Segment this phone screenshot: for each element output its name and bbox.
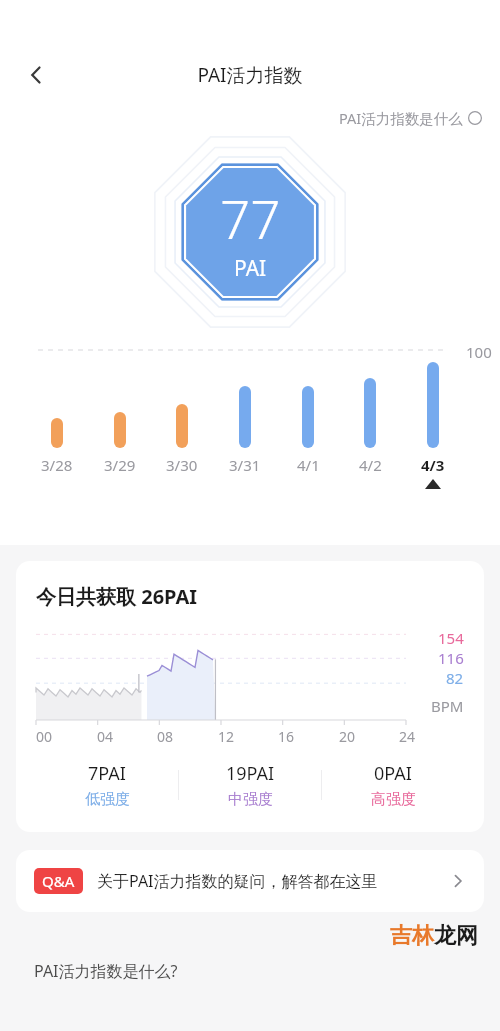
staticText: 中强度: [228, 790, 273, 809]
staticText: 4/1: [297, 455, 320, 475]
staticText: 4/2: [359, 455, 382, 475]
staticText: 3/31: [229, 455, 261, 475]
button[interactable]: 0PAI: [322, 761, 464, 809]
button[interactable]: PAI活力指数是什么: [339, 108, 482, 128]
staticText: 龙网: [434, 922, 478, 950]
staticText: 0PAI: [374, 761, 412, 786]
button[interactable]: Back: [14, 53, 58, 97]
staticText: 24: [399, 727, 416, 746]
staticText: 16: [278, 727, 295, 746]
staticText: PAI活力指数是什么: [339, 108, 463, 128]
staticText: 关于PAI活力指数的疑问，解答都在这里: [97, 870, 378, 892]
staticText: 19PAI: [226, 761, 275, 786]
staticText: 7PAI: [88, 761, 126, 786]
staticText: BPM: [431, 696, 464, 716]
staticText: 00: [36, 727, 53, 746]
staticText: 3/30: [166, 455, 198, 475]
button[interactable]: 7PAI: [36, 761, 178, 809]
staticText: 12: [218, 727, 235, 746]
staticText: 154: [438, 628, 464, 648]
staticText: 04: [97, 727, 114, 746]
button[interactable]: 今日共获取 26PAI: [16, 561, 484, 832]
staticText: 116: [438, 648, 464, 668]
staticText: PAI: [234, 254, 267, 283]
staticText: 高强度: [371, 790, 416, 809]
staticText: 吉林: [390, 922, 434, 950]
staticText: Q&A: [42, 871, 75, 891]
staticText: 77: [220, 182, 281, 254]
staticText: 4/3: [421, 455, 445, 475]
staticText: PAI活力指数是什么?: [34, 960, 178, 982]
staticText: 82: [446, 668, 464, 688]
staticText: 20: [339, 727, 356, 746]
staticText: 今日共获取 26PAI: [36, 583, 198, 610]
staticText: 08: [157, 727, 174, 746]
button[interactable]: 19PAI: [179, 761, 321, 809]
staticText: 3/28: [41, 455, 73, 475]
staticText: 3/29: [104, 455, 136, 475]
staticText: 低强度: [85, 790, 130, 809]
staticText: PAI活力指数: [197, 62, 303, 88]
button[interactable]: Q&A: [16, 850, 484, 912]
staticText: 100: [466, 342, 492, 362]
